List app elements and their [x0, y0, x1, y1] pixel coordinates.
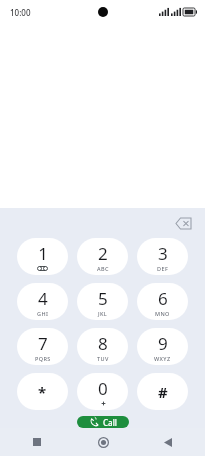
button[interactable]: Home: [88, 428, 118, 456]
staticText: GHI: [37, 310, 49, 317]
staticText: 10:00: [10, 7, 31, 18]
button[interactable]: 2: [77, 238, 128, 275]
button[interactable]: 9: [137, 328, 188, 365]
button[interactable]: 7: [17, 328, 68, 365]
button[interactable]: Back: [153, 428, 183, 456]
button[interactable]: Call: [77, 416, 129, 428]
button[interactable]: 8: [77, 328, 128, 365]
staticText: *: [38, 382, 47, 402]
button[interactable]: *: [17, 373, 68, 410]
staticText: WXYZ: [154, 355, 171, 362]
button[interactable]: 4: [17, 283, 68, 320]
staticText: 4: [38, 287, 48, 310]
staticText: 2: [98, 242, 108, 265]
staticText: JKL: [98, 310, 108, 317]
staticText: DEF: [157, 265, 169, 272]
button[interactable]: 5: [77, 283, 128, 320]
staticText: 7: [38, 332, 48, 355]
staticText: #: [158, 382, 168, 402]
staticText: 6: [158, 287, 168, 310]
button[interactable]: 6: [137, 283, 188, 320]
button[interactable]: Recents: [22, 428, 52, 456]
staticText: TUV: [97, 355, 109, 362]
button[interactable]: 3: [137, 238, 188, 275]
staticText: 3: [158, 242, 168, 265]
staticText: MNO: [155, 310, 170, 317]
button[interactable]: 1: [17, 238, 68, 275]
staticText: Call: [103, 417, 117, 428]
staticText: PQRS: [35, 355, 51, 362]
staticText: 1: [38, 242, 48, 265]
button[interactable]: 0: [77, 373, 128, 410]
staticText: 0: [98, 377, 108, 400]
staticText: 8: [98, 332, 108, 355]
staticText: ABC: [97, 265, 109, 272]
staticText: 9: [158, 332, 168, 355]
staticText: 5: [98, 287, 108, 310]
button[interactable]: #: [137, 373, 188, 410]
button[interactable]: Backspace: [170, 210, 196, 236]
